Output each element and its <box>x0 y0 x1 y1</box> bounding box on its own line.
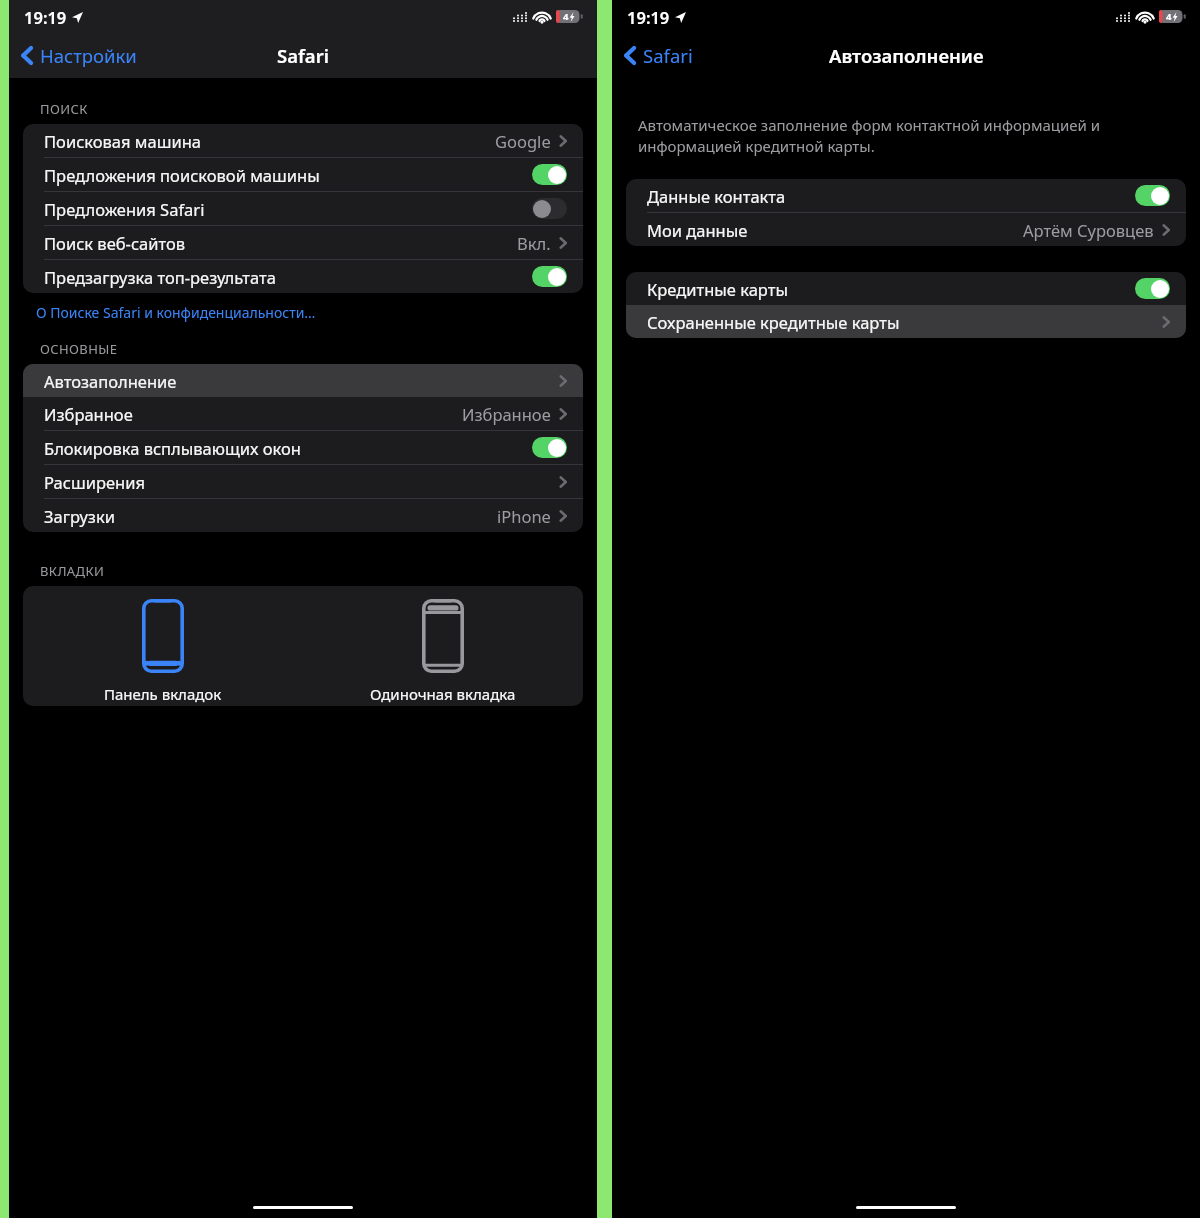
staticText: Расширения <box>44 471 145 493</box>
button[interactable]: Панель вкладок <box>23 599 303 704</box>
button[interactable] <box>532 198 567 219</box>
button[interactable]: Предложения Safari <box>23 192 583 225</box>
staticText: Настройки <box>40 43 137 68</box>
button[interactable]: О Поиске Safari и конфиденциальности… <box>36 300 316 325</box>
staticText: 19:19 <box>627 6 670 28</box>
button[interactable]: Одиночная вкладка <box>303 599 583 704</box>
staticText: 4 <box>1166 10 1172 23</box>
staticText: 4 <box>563 10 569 23</box>
staticText: ВКЛАДКИ <box>40 562 105 580</box>
staticText: 19:19 <box>24 6 67 28</box>
staticText: Поисковая машина <box>44 130 201 152</box>
staticText: Предложения Safari <box>44 198 205 220</box>
staticText: Избранное <box>44 403 133 425</box>
staticText: Одиночная вкладка <box>370 684 516 704</box>
staticText: iPhone <box>497 505 551 527</box>
staticText: Артём Суровцев <box>1023 219 1154 241</box>
staticText: Автозаполнение <box>44 370 177 392</box>
button[interactable]: Блокировка всплывающих окон <box>23 431 583 464</box>
staticText: Данные контакта <box>647 185 786 207</box>
staticText: Поиск веб-сайтов <box>44 232 186 254</box>
staticText: Вкл. <box>517 232 551 254</box>
button[interactable] <box>532 437 567 458</box>
staticText: Мои данные <box>647 219 748 241</box>
button[interactable] <box>532 266 567 287</box>
button[interactable]: Safari <box>620 38 697 73</box>
staticText: Google <box>495 130 551 152</box>
button[interactable]: Избранное <box>23 397 583 430</box>
button[interactable]: Сохраненные кредитные карты <box>626 305 1186 338</box>
button[interactable]: Поиск веб-сайтов <box>23 226 583 259</box>
button[interactable]: Загрузки <box>23 499 583 532</box>
staticText: Предзагрузка топ-результата <box>44 266 276 288</box>
staticText: Избранное <box>462 403 551 425</box>
button[interactable] <box>532 164 567 185</box>
staticText: ПОИСК <box>40 100 88 118</box>
button[interactable]: Данные контакта <box>626 179 1186 212</box>
button[interactable]: Предзагрузка топ-результата <box>23 260 583 293</box>
button[interactable]: Расширения <box>23 465 583 498</box>
staticText: Автозаполнение <box>829 43 984 68</box>
button[interactable]: Настройки <box>17 38 141 73</box>
button[interactable] <box>1135 278 1170 299</box>
button[interactable]: Кредитные карты <box>626 272 1186 305</box>
button[interactable]: Поисковая машина <box>23 124 583 157</box>
staticText: Предложения поисковой машины <box>44 164 320 186</box>
button[interactable]: Мои данные <box>626 213 1186 246</box>
staticText: О Поиске Safari и конфиденциальности… <box>36 303 316 322</box>
staticText: Блокировка всплывающих окон <box>44 437 301 459</box>
staticText: ОСНОВНЫЕ <box>40 340 118 358</box>
staticText: Панель вкладок <box>104 684 222 704</box>
staticText: Safari <box>643 43 693 68</box>
button[interactable] <box>1135 185 1170 206</box>
staticText: Автоматическое заполнение форм контактно… <box>638 115 1174 157</box>
button[interactable]: Автозаполнение <box>23 364 583 397</box>
staticText: Сохраненные кредитные карты <box>647 311 900 333</box>
staticText: Кредитные карты <box>647 278 788 300</box>
button[interactable]: Предложения поисковой машины <box>23 158 583 191</box>
staticText: Загрузки <box>44 505 115 527</box>
staticText: Safari <box>277 43 329 68</box>
